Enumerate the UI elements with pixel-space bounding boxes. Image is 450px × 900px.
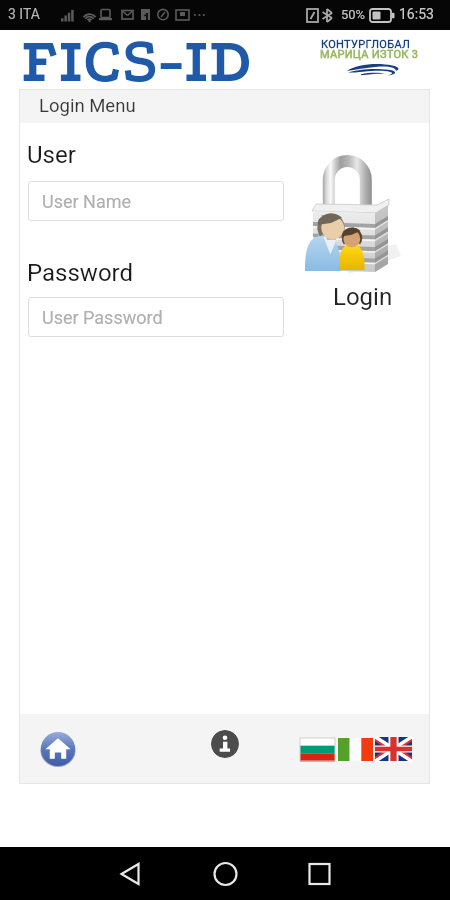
button[interactable]: Recent apps [297,862,342,886]
button[interactable]: Italian [338,738,373,761]
staticText: FICS-ID [21,26,252,97]
staticText: User Name [42,191,132,212]
staticText: Login [333,283,393,311]
button[interactable]: Information [211,730,239,758]
button[interactable]: Login [291,145,419,310]
staticText: МАРИЦА ИЗТОК 3 [320,48,419,61]
button[interactable]: Home [40,731,76,767]
staticText: User Password [42,307,163,328]
staticText: 16:53 [399,6,434,22]
button[interactable]: English [375,737,412,761]
staticText: 3 ITA [8,6,40,22]
staticText: User [27,141,76,169]
button[interactable]: User Name [28,181,284,221]
button[interactable]: Home [203,862,248,886]
staticText: Login Menu [39,95,136,117]
staticText: КОНТУРГЛОБАЛ [321,38,411,51]
button[interactable]: Back [108,862,153,886]
button[interactable]: User Password [28,297,284,337]
button[interactable]: Bulgarian [300,738,335,761]
staticText: 50% [341,7,366,22]
staticText: Password [27,259,134,287]
